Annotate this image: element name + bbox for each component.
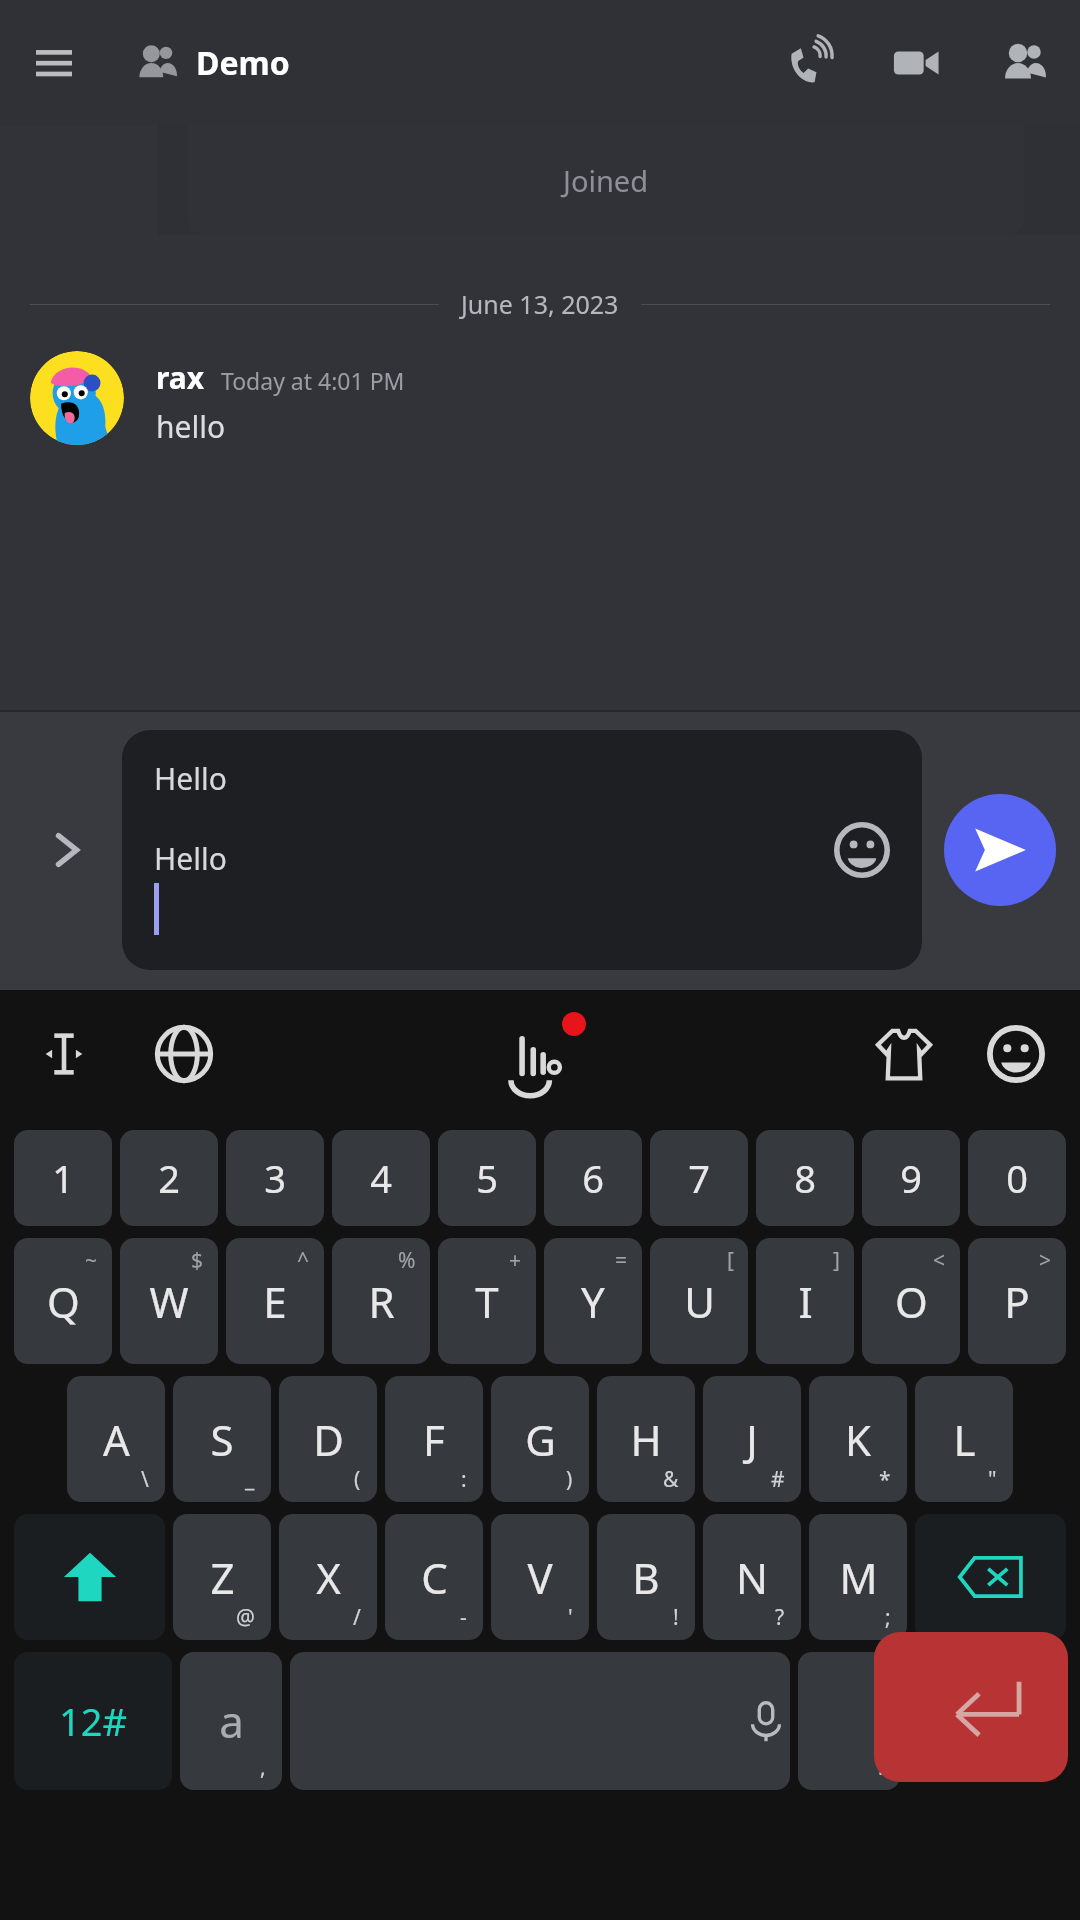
staticText: H — [630, 1411, 662, 1468]
button[interactable]: O — [862, 1238, 960, 1364]
staticText: 5 — [476, 1152, 498, 1204]
button[interactable]: K — [809, 1376, 907, 1502]
staticText: / — [353, 1603, 361, 1632]
staticText: \ — [141, 1465, 149, 1494]
staticText: 9 — [900, 1152, 922, 1204]
button[interactable]: 7 — [650, 1130, 748, 1226]
button[interactable]: I — [756, 1238, 854, 1364]
staticText: N — [736, 1549, 768, 1606]
button[interactable]: R — [332, 1238, 430, 1364]
staticText: P — [1004, 1273, 1030, 1330]
button[interactable]: E — [226, 1238, 324, 1364]
staticText: 3 — [264, 1152, 286, 1204]
staticText: a — [219, 1691, 244, 1751]
staticText: Today at 4:01 PM — [221, 365, 405, 396]
button[interactable]: 9 — [862, 1130, 960, 1226]
button[interactable]: 0 — [968, 1130, 1066, 1226]
button[interactable]: Text cursor — [22, 1012, 106, 1096]
button[interactable]: Hello — [122, 730, 922, 970]
button[interactable]: a — [180, 1652, 282, 1790]
staticText: A — [103, 1411, 130, 1468]
button[interactable]: A — [67, 1376, 165, 1502]
staticText: Hello — [154, 758, 227, 799]
button[interactable]: J — [703, 1376, 801, 1502]
button[interactable]: Backspace — [915, 1514, 1066, 1640]
button[interactable]: Shift — [14, 1514, 165, 1640]
button[interactable]: N — [703, 1514, 801, 1640]
button[interactable]: P — [968, 1238, 1066, 1364]
staticText: ^ — [297, 1246, 310, 1275]
staticText: + — [509, 1246, 522, 1275]
button[interactable]: 4 — [332, 1130, 430, 1226]
button[interactable]: Handwriting — [494, 1004, 594, 1104]
staticText: ; — [885, 1603, 891, 1632]
staticText: hello — [156, 406, 226, 447]
button[interactable]: Enter — [874, 1632, 1068, 1782]
staticText: @ — [236, 1603, 255, 1632]
staticText: : — [461, 1465, 467, 1494]
staticText: F — [423, 1411, 445, 1468]
button[interactable]: U — [650, 1238, 748, 1364]
button[interactable]: C — [385, 1514, 483, 1640]
staticText: 12# — [59, 1695, 128, 1747]
button[interactable]: M — [809, 1514, 907, 1640]
button[interactable]: Space — [290, 1652, 790, 1790]
staticText: Joined — [563, 161, 649, 200]
button[interactable]: . — [798, 1652, 900, 1790]
button[interactable]: 5 — [438, 1130, 536, 1226]
button[interactable]: S — [173, 1376, 271, 1502]
button[interactable]: 3 — [226, 1130, 324, 1226]
button[interactable]: Start voice call — [774, 27, 846, 99]
button[interactable]: Expand actions — [24, 807, 110, 893]
staticText: " — [988, 1465, 997, 1494]
button[interactable]: Themes — [862, 1012, 946, 1096]
button[interactable]: 12# — [14, 1652, 172, 1790]
button[interactable]: Menu — [22, 31, 86, 95]
staticText: D — [313, 1411, 344, 1468]
button[interactable]: V — [491, 1514, 589, 1640]
button[interactable]: D — [279, 1376, 377, 1502]
staticText: B — [632, 1549, 660, 1606]
staticText: O — [895, 1273, 928, 1330]
button[interactable]: Y — [544, 1238, 642, 1364]
staticText: T — [475, 1273, 499, 1330]
button[interactable]: T — [438, 1238, 536, 1364]
button[interactable]: X — [279, 1514, 377, 1640]
staticText: ( — [354, 1465, 361, 1494]
button[interactable]: L — [915, 1376, 1013, 1502]
staticText: 1 — [52, 1152, 74, 1204]
staticText: ~ — [85, 1246, 98, 1275]
staticText: I — [798, 1273, 813, 1330]
staticText: 4 — [370, 1152, 392, 1204]
staticText: K — [845, 1411, 871, 1468]
button[interactable]: Start video call — [880, 27, 952, 99]
staticText: . — [878, 1753, 884, 1782]
staticText: M — [839, 1549, 878, 1606]
button[interactable]: 2 — [120, 1130, 218, 1226]
button[interactable]: Change language — [142, 1012, 226, 1096]
staticText: June 13, 2023 — [461, 287, 619, 321]
button[interactable]: W — [120, 1238, 218, 1364]
staticText: $ — [191, 1246, 204, 1275]
button[interactable]: Send — [944, 794, 1056, 906]
button[interactable]: Emoji — [974, 1012, 1058, 1096]
button[interactable]: G — [491, 1376, 589, 1502]
button[interactable]: F — [385, 1376, 483, 1502]
staticText: # — [771, 1465, 785, 1494]
button[interactable]: 1 — [14, 1130, 112, 1226]
staticText: E — [263, 1273, 287, 1330]
button[interactable]: B — [597, 1514, 695, 1640]
button[interactable]: H — [597, 1376, 695, 1502]
staticText: ) — [566, 1465, 573, 1494]
button[interactable]: Emoji — [824, 812, 900, 888]
staticText: Z — [210, 1549, 235, 1606]
button[interactable]: Z — [173, 1514, 271, 1640]
staticText: 6 — [582, 1152, 604, 1204]
button[interactable]: 6 — [544, 1130, 642, 1226]
button[interactable]: Q — [14, 1238, 112, 1364]
button[interactable]: 8 — [756, 1130, 854, 1226]
staticText: ] — [833, 1246, 840, 1275]
button[interactable]: Members — [986, 27, 1058, 99]
staticText: V — [527, 1549, 553, 1606]
staticText: ? — [775, 1603, 785, 1632]
